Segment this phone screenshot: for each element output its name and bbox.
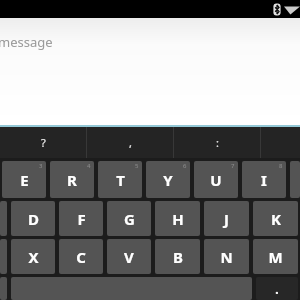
other: Wi-Fi bbox=[284, 4, 300, 16]
button[interactable]: message bbox=[0, 18, 300, 125]
button[interactable]: S bbox=[0, 201, 7, 236]
button[interactable]: , bbox=[87, 127, 173, 158]
staticText: 3 bbox=[39, 162, 43, 170]
staticText: N bbox=[220, 247, 233, 267]
staticText: X bbox=[28, 247, 39, 267]
button[interactable]: D bbox=[11, 201, 55, 236]
button[interactable]: C bbox=[59, 239, 103, 274]
staticText: : bbox=[216, 135, 219, 150]
staticText: E bbox=[20, 170, 29, 190]
staticText: . bbox=[275, 281, 279, 297]
staticText: J bbox=[224, 209, 229, 229]
staticText: H bbox=[172, 209, 184, 229]
other: Bluetooth bbox=[272, 3, 282, 16]
button[interactable]: T bbox=[98, 161, 142, 198]
staticText: 8 bbox=[279, 162, 283, 170]
staticText: F bbox=[77, 209, 86, 229]
staticText: , bbox=[129, 135, 132, 150]
staticText: 5 bbox=[135, 162, 139, 170]
staticText: R bbox=[67, 170, 77, 190]
staticText: ? bbox=[41, 135, 46, 150]
button[interactable]: : bbox=[174, 127, 260, 158]
button[interactable]: B bbox=[155, 239, 200, 274]
button[interactable]: X bbox=[11, 239, 55, 274]
button[interactable]: O bbox=[290, 161, 300, 198]
staticText: 7 bbox=[231, 162, 235, 170]
button[interactable]: Period bbox=[256, 277, 298, 300]
button[interactable]: V bbox=[107, 239, 151, 274]
staticText: V bbox=[124, 247, 134, 267]
staticText: B bbox=[173, 247, 183, 267]
staticText: M bbox=[268, 247, 283, 267]
staticText: D bbox=[28, 209, 39, 229]
button[interactable]: Y bbox=[146, 161, 190, 198]
staticText: U bbox=[210, 170, 222, 190]
staticText: I bbox=[261, 170, 267, 190]
staticText: G bbox=[124, 209, 135, 229]
button[interactable]: G bbox=[107, 201, 151, 236]
button[interactable]: N bbox=[204, 239, 249, 274]
button[interactable]: J bbox=[204, 201, 249, 236]
button[interactable]: E bbox=[2, 161, 46, 198]
staticText: K bbox=[271, 209, 281, 229]
staticText: C bbox=[76, 247, 86, 267]
button[interactable]: F bbox=[59, 201, 103, 236]
button[interactable]: R bbox=[50, 161, 94, 198]
button[interactable]: Symbols bbox=[0, 277, 7, 300]
button[interactable]: K bbox=[253, 201, 298, 236]
staticText: T bbox=[116, 170, 125, 190]
button[interactable]: I bbox=[242, 161, 286, 198]
staticText: 6 bbox=[183, 162, 187, 170]
button[interactable]: Z bbox=[0, 239, 7, 274]
button[interactable]: M bbox=[253, 239, 298, 274]
staticText: 4 bbox=[87, 162, 91, 170]
button[interactable]: U bbox=[194, 161, 238, 198]
button[interactable]: H bbox=[155, 201, 200, 236]
staticText: message bbox=[0, 33, 53, 51]
staticText: Y bbox=[163, 170, 173, 190]
button[interactable]: ? bbox=[0, 127, 86, 158]
